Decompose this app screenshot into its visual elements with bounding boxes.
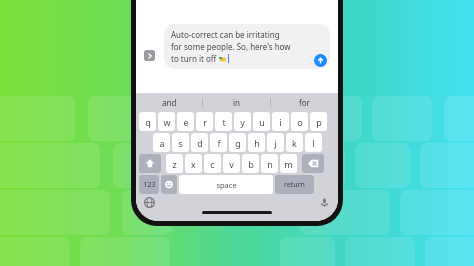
button[interactable]: q — [139, 112, 156, 131]
button[interactable]: for — [271, 93, 338, 112]
button[interactable]: o — [291, 112, 308, 131]
staticText: for — [299, 97, 310, 108]
button[interactable]: w — [158, 112, 175, 131]
button[interactable]: Change keyboard — [143, 196, 156, 209]
staticText: in — [233, 97, 241, 108]
button[interactable]: i — [272, 112, 289, 131]
staticText: v — [229, 158, 234, 170]
staticText: s — [178, 137, 183, 149]
button[interactable]: Backspace — [302, 154, 324, 173]
staticText: z — [172, 158, 177, 170]
staticText: g — [235, 137, 241, 149]
button[interactable]: s — [172, 133, 189, 152]
staticText: o — [297, 116, 303, 128]
button[interactable]: h — [248, 133, 265, 152]
button[interactable]: Auto-correct can be irritating — [164, 24, 330, 69]
button[interactable]: Dictation — [318, 196, 331, 209]
button[interactable]: r — [196, 112, 213, 131]
staticText: y — [240, 116, 245, 128]
button[interactable]: l — [305, 133, 322, 152]
staticText: f — [217, 137, 221, 149]
button[interactable]: z — [166, 154, 183, 173]
button[interactable]: Send — [314, 54, 327, 67]
staticText: return — [284, 180, 305, 190]
button[interactable]: 123 — [139, 175, 159, 194]
staticText: m — [284, 158, 293, 170]
button[interactable]: n — [261, 154, 278, 173]
staticText: a — [159, 137, 165, 149]
button[interactable]: Emoji — [161, 175, 177, 194]
staticText: j — [274, 137, 277, 149]
button[interactable]: m — [280, 154, 297, 173]
button[interactable]: x — [185, 154, 202, 173]
staticText: 123 — [143, 180, 156, 190]
staticText: w — [163, 116, 171, 128]
button[interactable]: g — [229, 133, 246, 152]
staticText: t — [222, 116, 226, 128]
staticText: u — [259, 116, 265, 128]
button[interactable]: in — [203, 93, 270, 112]
button[interactable]: e — [177, 112, 194, 131]
staticText: n — [267, 158, 273, 170]
button[interactable]: d — [191, 133, 208, 152]
button[interactable]: return — [275, 175, 314, 194]
staticText: p — [316, 116, 322, 128]
staticText: and — [162, 97, 177, 108]
button[interactable]: space — [179, 175, 273, 194]
staticText: b — [248, 158, 254, 170]
button[interactable]: k — [286, 133, 303, 152]
button[interactable]: Shift — [139, 154, 161, 173]
staticText: Auto-correct can be irritating — [171, 29, 280, 40]
staticText: e — [183, 116, 189, 128]
button[interactable]: a — [153, 133, 170, 152]
button[interactable]: and — [136, 93, 202, 112]
button[interactable]: f — [210, 133, 227, 152]
button[interactable]: Expand apps — [144, 50, 155, 61]
button[interactable]: t — [215, 112, 232, 131]
staticText: q — [145, 116, 151, 128]
button[interactable]: p — [310, 112, 327, 131]
button[interactable]: j — [267, 133, 284, 152]
button[interactable]: c — [204, 154, 221, 173]
staticText: i — [279, 116, 282, 128]
staticText: space — [216, 180, 237, 190]
staticText: r — [203, 116, 207, 128]
button[interactable]: v — [223, 154, 240, 173]
button[interactable]: y — [234, 112, 251, 131]
button[interactable]: b — [242, 154, 259, 173]
staticText: k — [292, 137, 297, 149]
staticText: x — [191, 158, 196, 170]
staticText: for some people. So, here's how — [171, 41, 291, 52]
staticText: h — [254, 137, 260, 149]
staticText: to turn it off — [171, 53, 219, 64]
staticText: d — [197, 137, 203, 149]
button[interactable]: u — [253, 112, 270, 131]
staticText: l — [312, 137, 315, 149]
staticText: c — [210, 158, 215, 170]
